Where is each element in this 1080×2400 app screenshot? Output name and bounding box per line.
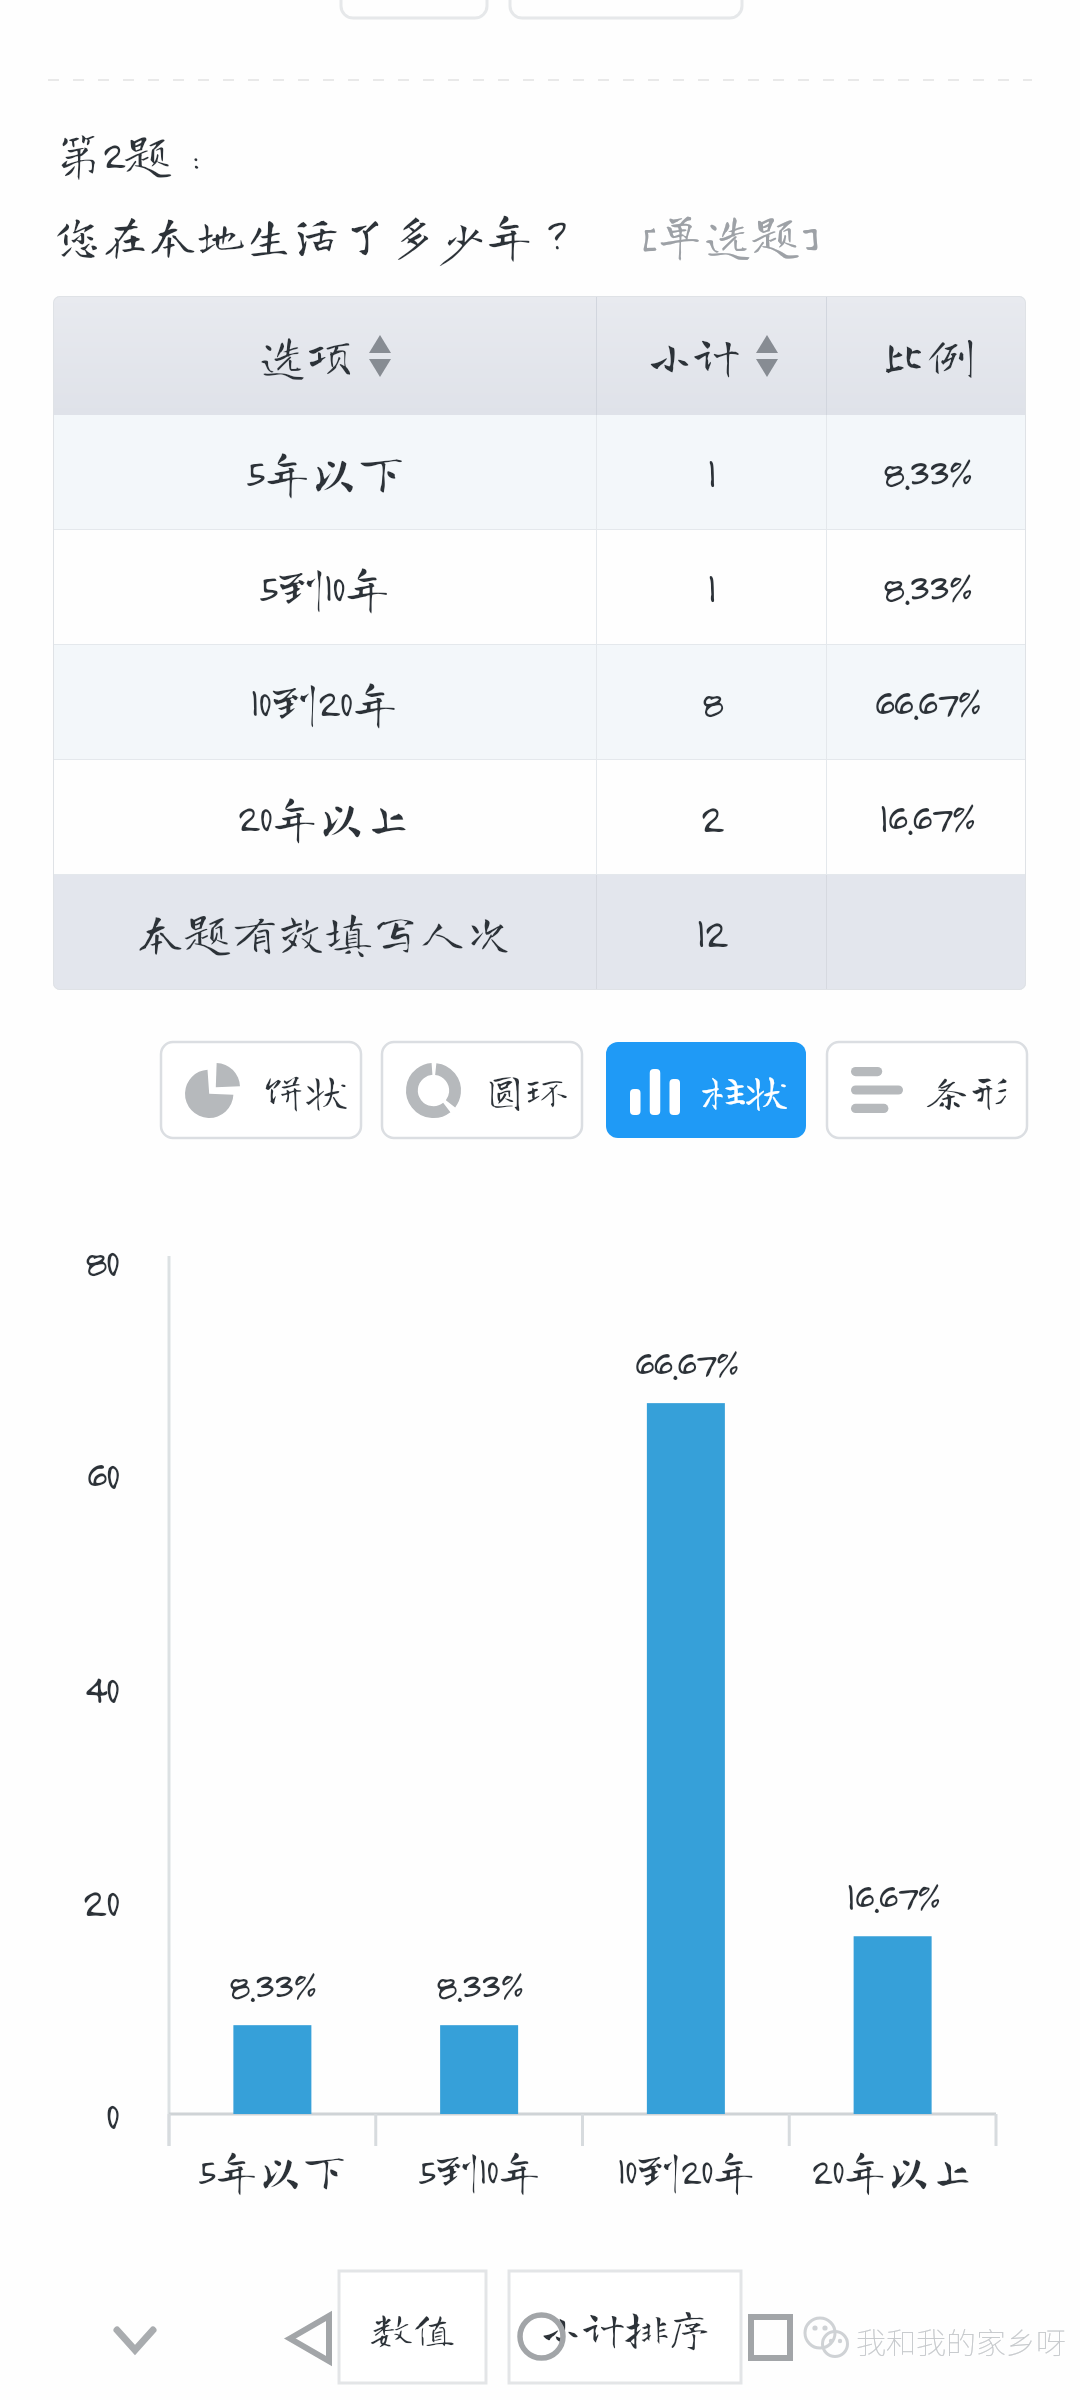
staticText: 圆环: [483, 1069, 569, 1112]
staticText: 16.67%: [846, 1872, 940, 1920]
button[interactable]: 柱状: [606, 1042, 806, 1138]
staticText: 选项: [259, 332, 353, 379]
staticText: 40: [84, 1663, 119, 1713]
staticText: 饼状: [262, 1069, 348, 1112]
staticText: 66.67%: [874, 678, 980, 727]
staticText: 20年以上: [237, 794, 413, 841]
staticText: 8.33%: [882, 563, 972, 612]
button[interactable]: Recents: [748, 2314, 793, 2361]
staticText: 8.33%: [435, 1961, 523, 2009]
staticText: 1: [707, 448, 716, 497]
staticText: 我和我的家乡呀: [856, 2319, 1066, 2362]
button[interactable]: 5到10年: [53, 530, 1026, 644]
staticText: 小计排序: [539, 2306, 711, 2349]
button[interactable]: 条形: [827, 1042, 1027, 1138]
staticText: 5年以下: [197, 2148, 347, 2192]
staticText: 8: [701, 678, 722, 727]
button[interactable]: 饼状: [161, 1042, 361, 1138]
staticText: 第2题：: [54, 130, 221, 178]
staticText: 您在本地生活了多少年？: [53, 211, 582, 259]
staticText: 2: [700, 793, 723, 842]
staticText: 0: [105, 2089, 119, 2139]
staticText: 5到10年: [417, 2148, 542, 2192]
staticText: 66.67%: [634, 1339, 738, 1387]
staticText: 1: [707, 563, 716, 612]
button[interactable]: 10到20年: [53, 645, 1026, 759]
staticText: [单选题]: [641, 211, 818, 259]
staticText: 数值: [370, 2306, 456, 2349]
button[interactable]: 数值: [339, 2271, 486, 2383]
button[interactable]: 小计: [597, 296, 826, 415]
staticText: 80: [84, 1236, 119, 1286]
staticText: 20年以上: [811, 2148, 976, 2192]
staticText: 5年以下: [245, 449, 405, 496]
staticText: 5到10年: [258, 564, 391, 611]
staticText: 12: [696, 908, 727, 957]
button[interactable]: Home: [517, 2312, 566, 2361]
staticText: 本题有效填写人次: [137, 909, 513, 956]
staticText: 柱状: [702, 1069, 788, 1112]
button[interactable]: 比例: [827, 296, 1026, 415]
button[interactable]: 5年以下: [53, 415, 1026, 529]
staticText: 8.33%: [228, 1961, 316, 2009]
staticText: 8.33%: [882, 448, 972, 497]
staticText: 10到20年: [617, 2148, 756, 2192]
button[interactable]: 20年以上: [53, 760, 1026, 874]
staticText: 16.67%: [879, 793, 974, 842]
staticText: 小计: [646, 332, 740, 379]
staticText: 60: [86, 1449, 119, 1499]
button[interactable]: 本题有效填写人次: [53, 875, 1026, 990]
button[interactable]: Back: [287, 2313, 332, 2364]
button[interactable]: 选项: [53, 296, 596, 415]
button[interactable]: 圆环: [382, 1042, 582, 1138]
staticText: 20: [82, 1876, 119, 1926]
button[interactable]: Collapse: [108, 2316, 162, 2360]
button[interactable]: 小计排序: [509, 2271, 741, 2383]
staticText: 条形: [925, 1069, 1011, 1112]
staticText: 比例: [880, 332, 974, 379]
staticText: 10到20年: [250, 679, 399, 726]
